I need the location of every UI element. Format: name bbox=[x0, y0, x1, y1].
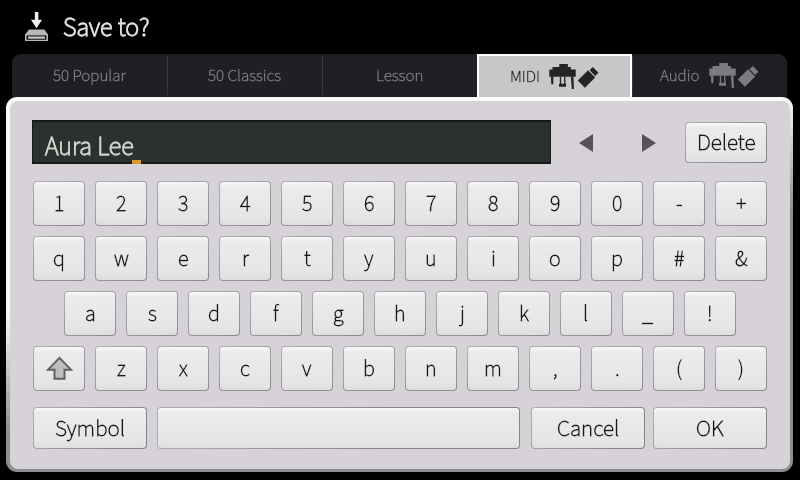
button[interactable]: e bbox=[158, 237, 208, 280]
staticText: 2 bbox=[116, 188, 127, 219]
staticText: a bbox=[85, 298, 96, 329]
button[interactable]: Next bbox=[633, 127, 665, 159]
staticText: o bbox=[549, 243, 561, 274]
staticText: f bbox=[273, 298, 279, 329]
button[interactable]: 2 bbox=[96, 182, 146, 225]
staticText: n bbox=[425, 353, 437, 384]
staticText: + bbox=[736, 188, 747, 219]
button[interactable]: 50 Classics bbox=[167, 54, 322, 97]
button[interactable]: 0 bbox=[592, 182, 642, 225]
staticText: w bbox=[114, 243, 129, 274]
button[interactable]: 9 bbox=[530, 182, 580, 225]
staticText: Cancel bbox=[557, 412, 620, 445]
button[interactable]: 4 bbox=[220, 182, 270, 225]
button[interactable]: j bbox=[437, 292, 487, 335]
staticText: 50 Classics bbox=[208, 64, 281, 88]
staticText: ! bbox=[707, 298, 713, 329]
staticText: 5 bbox=[302, 188, 313, 219]
button[interactable]: ! bbox=[685, 292, 735, 335]
button[interactable]: a bbox=[65, 292, 115, 335]
button[interactable]: Shift bbox=[34, 347, 84, 390]
button[interactable]: ( bbox=[654, 347, 704, 390]
button[interactable]: p bbox=[592, 237, 642, 280]
staticText: r bbox=[242, 243, 249, 274]
button[interactable]: i bbox=[468, 237, 518, 280]
staticText: g bbox=[333, 298, 344, 329]
staticText: 4 bbox=[240, 188, 251, 219]
button[interactable]: 5 bbox=[282, 182, 332, 225]
staticText: 7 bbox=[426, 188, 437, 219]
button[interactable]: & bbox=[716, 237, 766, 280]
button[interactable]: l bbox=[561, 292, 611, 335]
button[interactable]: 3 bbox=[158, 182, 208, 225]
button[interactable]: Cancel bbox=[532, 408, 644, 448]
button[interactable]: r bbox=[220, 237, 270, 280]
button[interactable]: 7 bbox=[406, 182, 456, 225]
button[interactable]: Delete bbox=[686, 123, 766, 162]
button[interactable]: d bbox=[189, 292, 239, 335]
button[interactable]: # bbox=[654, 237, 704, 280]
button[interactable]: + bbox=[716, 182, 766, 225]
button[interactable]: , bbox=[530, 347, 580, 390]
staticText: e bbox=[178, 243, 189, 274]
staticText: & bbox=[735, 243, 748, 274]
button[interactable]: u bbox=[406, 237, 456, 280]
staticText: b bbox=[363, 353, 375, 384]
button[interactable]: m bbox=[468, 347, 518, 390]
staticText: v bbox=[302, 353, 312, 384]
button[interactable]: Space bbox=[158, 408, 519, 448]
button[interactable]: g bbox=[313, 292, 363, 335]
staticText: OK bbox=[696, 412, 724, 445]
staticText: ( bbox=[676, 353, 682, 384]
staticText: q bbox=[53, 243, 65, 274]
staticText: 8 bbox=[488, 188, 499, 219]
button[interactable]: 1 bbox=[34, 182, 84, 225]
staticText: t bbox=[304, 243, 311, 274]
staticText: 50 Popular bbox=[53, 64, 126, 88]
staticText: 9 bbox=[550, 188, 561, 219]
button[interactable]: _ bbox=[623, 292, 673, 335]
button[interactable]: Audio bbox=[632, 54, 787, 97]
staticText: Symbol bbox=[55, 412, 126, 445]
button[interactable]: s bbox=[127, 292, 177, 335]
button[interactable]: Lesson bbox=[322, 54, 477, 97]
staticText: MIDI bbox=[510, 65, 540, 89]
button[interactable]: v bbox=[282, 347, 332, 390]
button[interactable]: t bbox=[282, 237, 332, 280]
button[interactable]: . bbox=[592, 347, 642, 390]
staticText: z bbox=[117, 353, 126, 384]
button[interactable]: 8 bbox=[468, 182, 518, 225]
button[interactable]: MIDI bbox=[479, 56, 630, 97]
staticText: ) bbox=[738, 353, 744, 384]
button[interactable]: y bbox=[344, 237, 394, 280]
button[interactable]: Symbol bbox=[34, 408, 146, 448]
button[interactable]: o bbox=[530, 237, 580, 280]
button[interactable]: ) bbox=[716, 347, 766, 390]
button[interactable]: 6 bbox=[344, 182, 394, 225]
staticText: x bbox=[179, 353, 188, 384]
other: Save bbox=[25, 12, 48, 41]
button[interactable]: Previous bbox=[570, 127, 602, 159]
button[interactable]: - bbox=[654, 182, 704, 225]
button[interactable]: w bbox=[96, 237, 146, 280]
button[interactable]: k bbox=[499, 292, 549, 335]
button[interactable]: 50 Popular bbox=[12, 54, 167, 97]
staticText: _ bbox=[642, 298, 654, 329]
staticText: d bbox=[208, 298, 220, 329]
button[interactable]: n bbox=[406, 347, 456, 390]
staticText: p bbox=[611, 243, 623, 274]
button[interactable]: h bbox=[375, 292, 425, 335]
staticText: u bbox=[425, 243, 437, 274]
button[interactable]: z bbox=[96, 347, 146, 390]
button[interactable]: c bbox=[220, 347, 270, 390]
button[interactable]: b bbox=[344, 347, 394, 390]
staticText: . bbox=[615, 353, 620, 384]
staticText: Aura Lee bbox=[45, 128, 134, 165]
button[interactable]: OK bbox=[654, 408, 766, 448]
button[interactable]: x bbox=[158, 347, 208, 390]
staticText: Lesson bbox=[376, 64, 424, 88]
button[interactable]: f bbox=[251, 292, 301, 335]
button[interactable]: Aura Lee bbox=[33, 122, 550, 162]
staticText: - bbox=[676, 188, 683, 219]
button[interactable]: q bbox=[34, 237, 84, 280]
